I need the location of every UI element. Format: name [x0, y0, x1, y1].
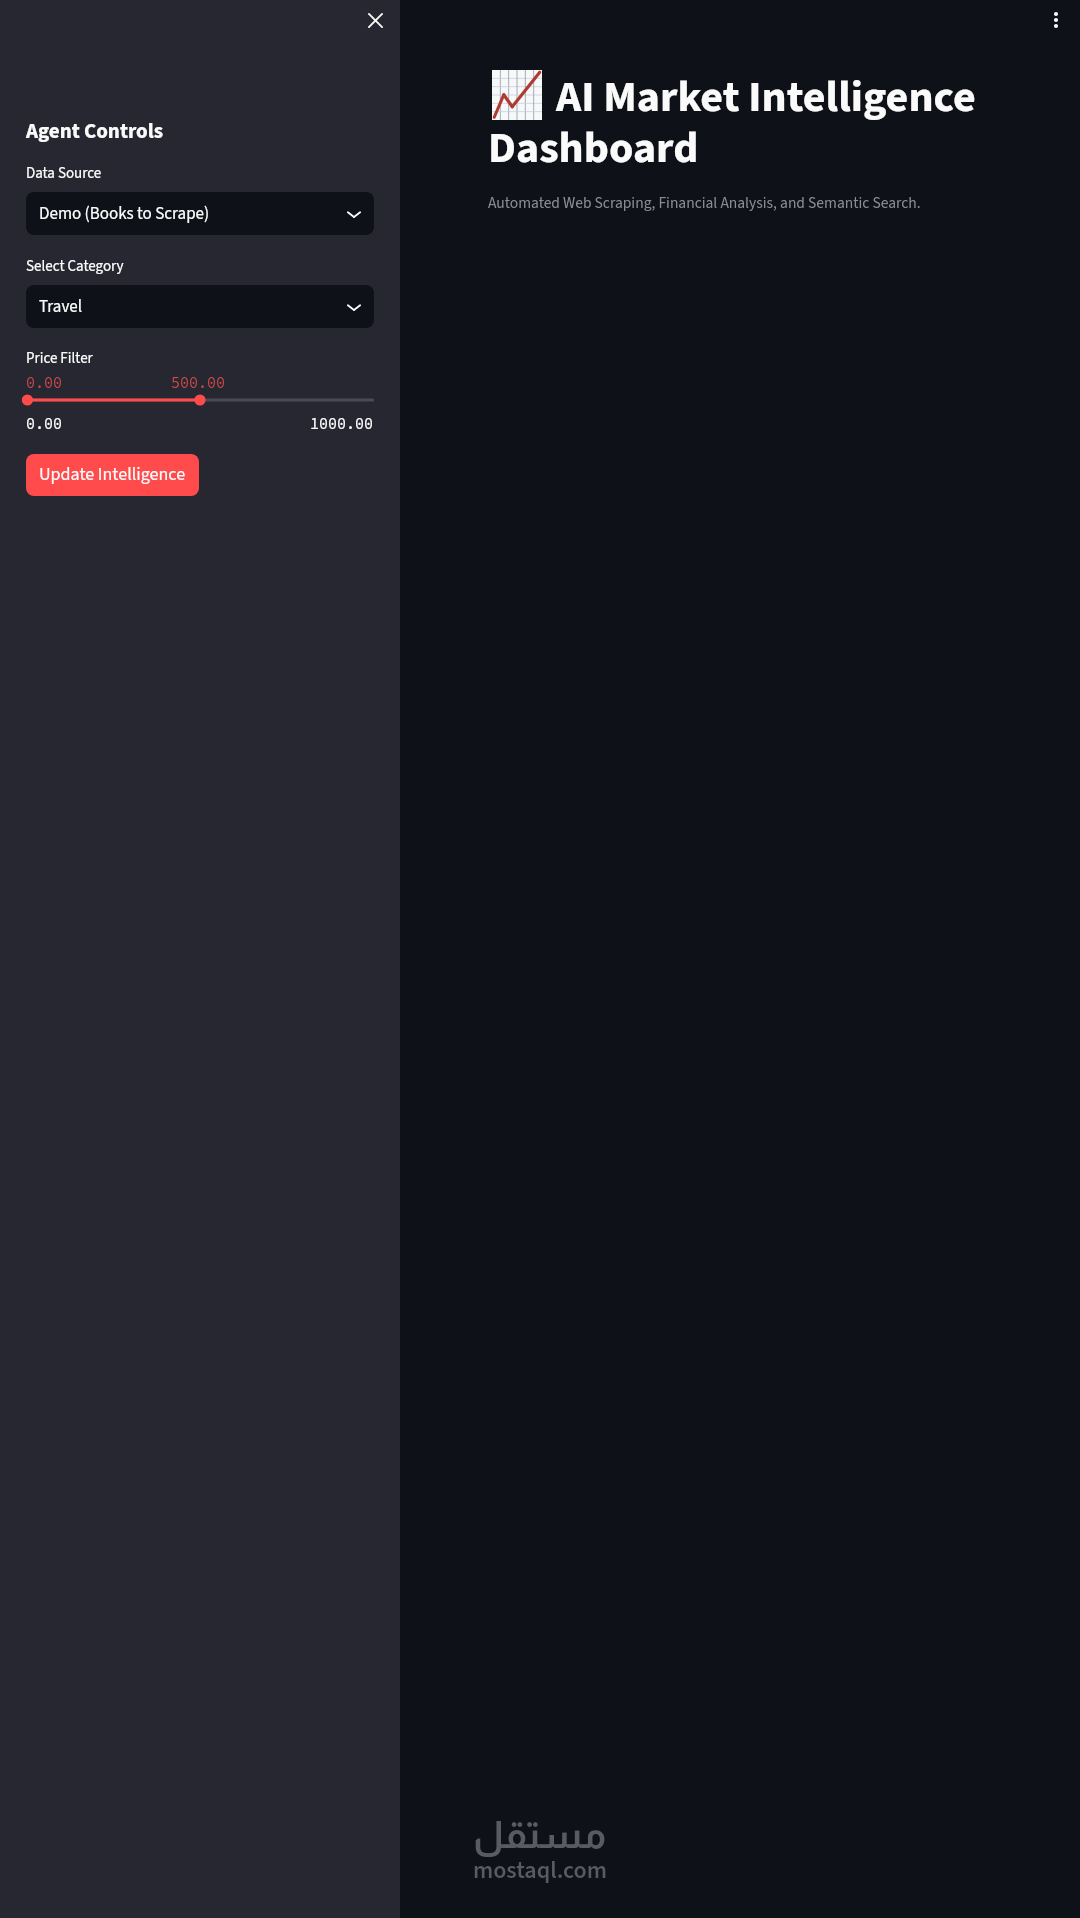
other: Expand	[345, 298, 363, 316]
button[interactable]: Close sidebar	[358, 3, 392, 37]
button[interactable]: Price range slider	[26, 392, 374, 408]
staticText: Agent Controls	[26, 116, 164, 146]
staticText: Price Filter	[26, 348, 93, 369]
staticText: Update Intelligence	[39, 462, 186, 488]
staticText: Select Category	[26, 256, 124, 277]
staticText: 0.00	[26, 414, 63, 433]
staticText: Demo (Books to Scrape)	[39, 202, 345, 226]
staticText: Travel	[39, 295, 345, 319]
staticText: mostaql.com	[473, 1853, 608, 1887]
staticText: AI Market Intelligence	[556, 66, 976, 129]
staticText: 0.00	[26, 373, 63, 392]
button[interactable]: Travel	[26, 285, 374, 328]
button[interactable]: Update Intelligence	[26, 454, 199, 496]
staticText: مستقل	[473, 1814, 607, 1856]
staticText: Automated Web Scraping, Financial Analys…	[488, 192, 921, 214]
staticText: Data Source	[26, 163, 102, 184]
button[interactable]: Demo (Books to Scrape)	[26, 192, 374, 235]
staticText: 1000.00	[310, 414, 374, 433]
staticText: Dashboard	[488, 117, 699, 180]
button[interactable]: More options	[1039, 3, 1073, 37]
other: Expand	[345, 205, 363, 223]
staticText: 500.00	[171, 373, 226, 392]
